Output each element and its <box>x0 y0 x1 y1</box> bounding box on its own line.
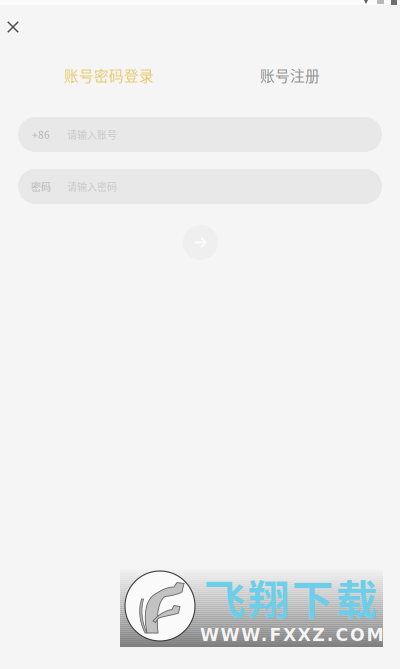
staticText: 飞翔下载 <box>204 567 377 627</box>
staticText: 请输入账号 <box>67 127 117 142</box>
button[interactable]: Close <box>0 12 30 42</box>
button[interactable]: 账号注册 <box>230 59 350 91</box>
button[interactable]: 账号密码登录 <box>39 59 179 91</box>
button[interactable]: 密码 <box>18 169 382 204</box>
staticText: +86 <box>32 127 50 142</box>
staticText: WWW.FXXZ.COM <box>200 625 384 645</box>
staticText: 账号注册 <box>260 64 320 86</box>
staticText: 请输入密码 <box>67 179 117 194</box>
staticText: 账号密码登录 <box>64 64 154 86</box>
staticText: 密码 <box>31 179 51 194</box>
button[interactable]: +86 <box>18 117 382 152</box>
